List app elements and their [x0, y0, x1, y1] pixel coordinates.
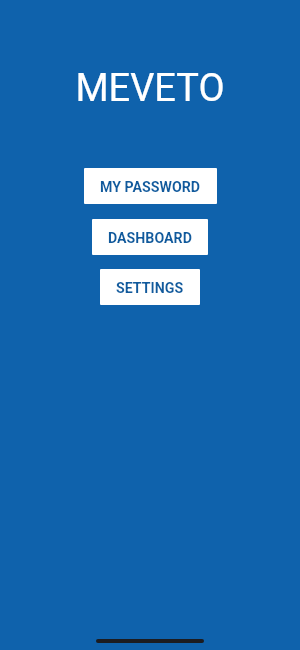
staticText: MEVETO — [75, 66, 225, 111]
button[interactable]: DASHBOARD — [92, 219, 208, 255]
staticText: SETTINGS — [116, 280, 184, 297]
staticText: MY PASSWORD — [100, 179, 201, 196]
staticText: DASHBOARD — [108, 230, 192, 247]
button[interactable]: MY PASSWORD — [84, 168, 217, 204]
button[interactable]: SETTINGS — [100, 269, 200, 305]
